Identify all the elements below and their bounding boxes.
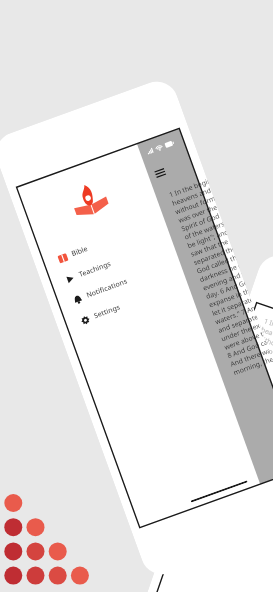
button[interactable]: Settings: [63, 272, 191, 337]
staticText: darkness he called Night. And there was: [233, 401, 273, 452]
button[interactable]: Notifications: [56, 252, 183, 316]
staticText: Teachings: [77, 259, 113, 280]
staticText: be light"; and there was light. 4 And Go…: [245, 367, 273, 418]
staticText: darkness he called Night. And there was: [198, 262, 240, 284]
staticText: expanse in the midst of the waters, and: [208, 287, 249, 309]
button[interactable]: Teachings: [48, 231, 176, 295]
staticText: Settings: [92, 302, 122, 321]
staticText: Spirit of God was hovering over the face: [251, 350, 273, 401]
staticText: of the waters. 3 And God said, "Let ther…: [183, 219, 225, 242]
staticText: under the expanse from the waters that: [213, 461, 273, 511]
staticText: Bible: [70, 244, 89, 259]
staticText: without form, and void; and darkness: [257, 333, 273, 381]
staticText: was over the face of the deep. And the: [254, 342, 273, 390]
staticText: and separated the waters that were: [217, 312, 258, 335]
staticText: heavens and the earth. 2 The earth was: [260, 325, 273, 374]
staticText: heavens and the earth. 2 The earth was: [171, 185, 212, 208]
staticText: And there was evening and there was: [204, 487, 273, 534]
staticText: expanse in the midst of the waters, and: [225, 427, 273, 476]
staticText: separated the light from the darkness.: [192, 245, 234, 267]
staticText: let it separate the waters from the: [222, 435, 273, 479]
staticText: waters." 7 And God made the expanse: [214, 304, 255, 326]
staticText: were above the expanse. And it was so.: [210, 470, 273, 519]
staticText: of the waters. 3 And God said, "Let ther…: [248, 359, 273, 409]
staticText: 1 In the beginning God created the: [168, 177, 209, 199]
staticText: was over the face of the deep. And the: [177, 202, 219, 225]
staticText: under the expanse from the waters that: [220, 321, 261, 343]
staticText: 8 And God called the expanse Heaven.: [226, 338, 268, 360]
staticText: separated the light from the darkness.: [239, 384, 273, 433]
staticText: God called the light Day, and the: [236, 393, 273, 435]
staticText: morning, the second day.: [232, 355, 273, 377]
staticText: evening and there was morning, the first: [202, 270, 243, 292]
staticText: God called the light Day, and the: [195, 253, 237, 276]
staticText: Notifications: [85, 276, 129, 300]
button[interactable]: Open navigation menu: [149, 161, 172, 184]
staticText: morning, the second day.: [201, 495, 273, 530]
staticText: saw that the light was good; and God: [242, 376, 273, 423]
button[interactable]: Bible: [41, 210, 168, 275]
staticText: 8 And God called the expanse Heaven.: [207, 478, 273, 527]
staticText: day. 6 And God said, "Let there be an: [205, 279, 246, 301]
staticText: evening and there was morning, the first: [230, 410, 273, 461]
staticText: and separated the waters that were: [216, 452, 273, 498]
staticText: day. 6 And God said, "Let there be an: [228, 418, 273, 465]
staticText: waters." 7 And God made the expanse: [219, 444, 273, 492]
staticText: be light"; and there was light. 4 And Go…: [186, 228, 228, 250]
staticText: And there was evening and there was: [229, 346, 271, 369]
staticText: without form, and void; and darkness: [174, 194, 216, 216]
staticText: saw that the light was good; and God: [189, 236, 231, 259]
staticText: were above the expanse. And it was so.: [223, 329, 265, 352]
staticText: let it separate the waters from the: [211, 295, 252, 318]
staticText: Spirit of God was hovering over the face: [180, 211, 222, 233]
staticText: 1 In the beginning God created the: [263, 316, 273, 361]
